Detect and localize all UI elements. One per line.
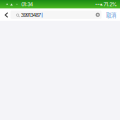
button[interactable]: Back (0, 9, 10, 21)
button[interactable]: 取消 (104, 9, 118, 21)
staticText: ••• (95, 2, 101, 7)
staticText: 39913487 (21, 12, 41, 18)
staticText: 取消 (106, 11, 116, 19)
staticText: 01:34 (21, 1, 33, 8)
button[interactable]: Clear search text (94, 11, 101, 19)
staticText: 71.2% (103, 1, 117, 8)
